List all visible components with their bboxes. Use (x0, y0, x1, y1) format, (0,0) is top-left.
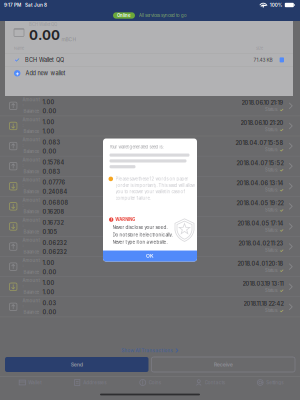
staticText: ✓ (14, 56, 19, 64)
staticText: Amount: (22, 197, 39, 208)
staticText: 71.43 KB (254, 57, 273, 63)
staticText: Name (14, 46, 24, 51)
staticText: ! (111, 217, 112, 222)
staticText: Balance: (23, 129, 39, 134)
button[interactable]: Settings (240, 375, 300, 389)
button[interactable]: Amount: (0, 116, 300, 136)
staticText: ✓ (280, 167, 284, 173)
staticText: WARNING (115, 217, 135, 222)
button[interactable]: Amount: (0, 96, 300, 116)
staticText: 0.15784 (42, 159, 64, 166)
staticText: 0.16208 (42, 208, 64, 215)
staticText: BCH Wallet QQ (29, 22, 57, 27)
staticText: Status: (265, 107, 278, 112)
staticText: OK (146, 253, 154, 259)
button[interactable]: Amount: (0, 156, 300, 176)
button[interactable]: Receive (151, 357, 295, 372)
staticText: you to recover your wallet in case of (115, 189, 185, 194)
staticText: Balance: (23, 310, 39, 315)
staticText: Addresses (83, 380, 106, 385)
staticText: Receive (214, 361, 233, 368)
button[interactable]: Coins (120, 375, 180, 389)
button[interactable]: Send (5, 357, 148, 372)
staticText: Add new wallet (25, 70, 65, 77)
staticText: mBCH (62, 36, 77, 42)
button[interactable]: + (5, 67, 293, 80)
staticText: Amount: (22, 137, 39, 147)
staticText: 0.083 (42, 139, 60, 146)
staticText: ✓ (280, 147, 284, 152)
button[interactable]: Amount: (0, 297, 300, 317)
staticText: + (15, 70, 19, 77)
staticText: Status: (265, 288, 278, 293)
staticText: 1.00 (42, 280, 54, 286)
staticText: Balance: (23, 189, 39, 194)
staticText: Amount: (22, 238, 39, 248)
staticText: computer failure. (115, 196, 150, 201)
staticText: Status: (265, 187, 278, 193)
staticText: 0.24084 (42, 188, 67, 195)
staticText: All services synced to go (139, 13, 187, 18)
button[interactable]: Wallet (0, 375, 60, 389)
staticText: ✓ (280, 227, 284, 233)
staticText: Balance: (23, 109, 39, 114)
button[interactable]: ✓ (5, 53, 293, 66)
button[interactable]: Amount: (0, 237, 300, 257)
staticText: Do not store it electronically. (112, 232, 172, 237)
staticText: Settings (266, 380, 283, 385)
button[interactable]: Amount: (0, 257, 300, 277)
staticText: 1.00 (42, 99, 54, 106)
staticText: 9:17 PM (4, 2, 21, 8)
staticText: Never type it on a website. (112, 240, 167, 245)
staticText: Amount: (22, 97, 39, 107)
button[interactable]: Show All Transactions (0, 344, 300, 357)
staticText: Status: (265, 268, 278, 273)
button[interactable]: Addresses (60, 375, 120, 389)
staticText: 0.00 (42, 309, 56, 316)
staticText: 2018.04.05 17:14 (238, 220, 284, 227)
staticText: Amount: (22, 117, 39, 127)
staticText: 2018.06.10 21:20 (241, 119, 284, 126)
staticText: Show All Transactions (121, 348, 173, 353)
staticText: Sat Jun 8 (25, 2, 47, 8)
staticText: Balance: (23, 149, 39, 154)
button[interactable]: Amount: (0, 176, 300, 196)
staticText: Balance: (23, 249, 39, 255)
staticText: Amount: (22, 177, 39, 188)
staticText: Online (117, 13, 131, 18)
staticText: 1.00 (42, 289, 54, 296)
staticText: 2018.04.06 13:14 (237, 180, 284, 187)
button[interactable]: Contacts (180, 375, 240, 389)
staticText: 0.00 (42, 108, 56, 115)
staticText: 2018.04.05 19:22 (237, 200, 284, 207)
staticText: Never disclose your seed. (112, 225, 167, 230)
staticText: 100% (270, 2, 283, 8)
button[interactable]: Amount: (0, 217, 300, 237)
staticText: 0.083 (42, 168, 60, 175)
staticText: 2018.04.01 20:18 (238, 260, 284, 267)
staticText: Status: (265, 308, 278, 313)
staticText: Status: (265, 228, 278, 233)
staticText: Balance: (23, 169, 39, 174)
button[interactable]: Amount: (0, 136, 300, 156)
staticText: 2018.03.19 13:11 (243, 280, 284, 287)
staticText: ✓ (280, 187, 284, 193)
staticText: Your wallet generated seed is: (109, 144, 163, 149)
staticText: Status: (265, 147, 278, 152)
button[interactable]: Amount: (0, 277, 300, 297)
staticText: ✓ (280, 207, 284, 213)
button[interactable]: OK (103, 250, 197, 261)
staticText: Status: (265, 127, 278, 132)
staticText: 2018.04.07 15:52 (237, 160, 284, 166)
staticText: (order is important). This seed will all… (115, 183, 194, 188)
staticText: Amount: (22, 298, 39, 308)
staticText: ✓ (280, 308, 284, 313)
staticText: Balance: (23, 290, 39, 295)
staticText: Status: (265, 167, 278, 172)
staticText: Amount: (22, 218, 39, 228)
staticText: 1.00 (42, 128, 54, 135)
staticText: 0.06808 (42, 199, 68, 206)
staticText: Balance: (23, 209, 39, 214)
button[interactable]: Amount: (0, 196, 300, 217)
staticText: BCH Wallet QQ (25, 56, 64, 63)
